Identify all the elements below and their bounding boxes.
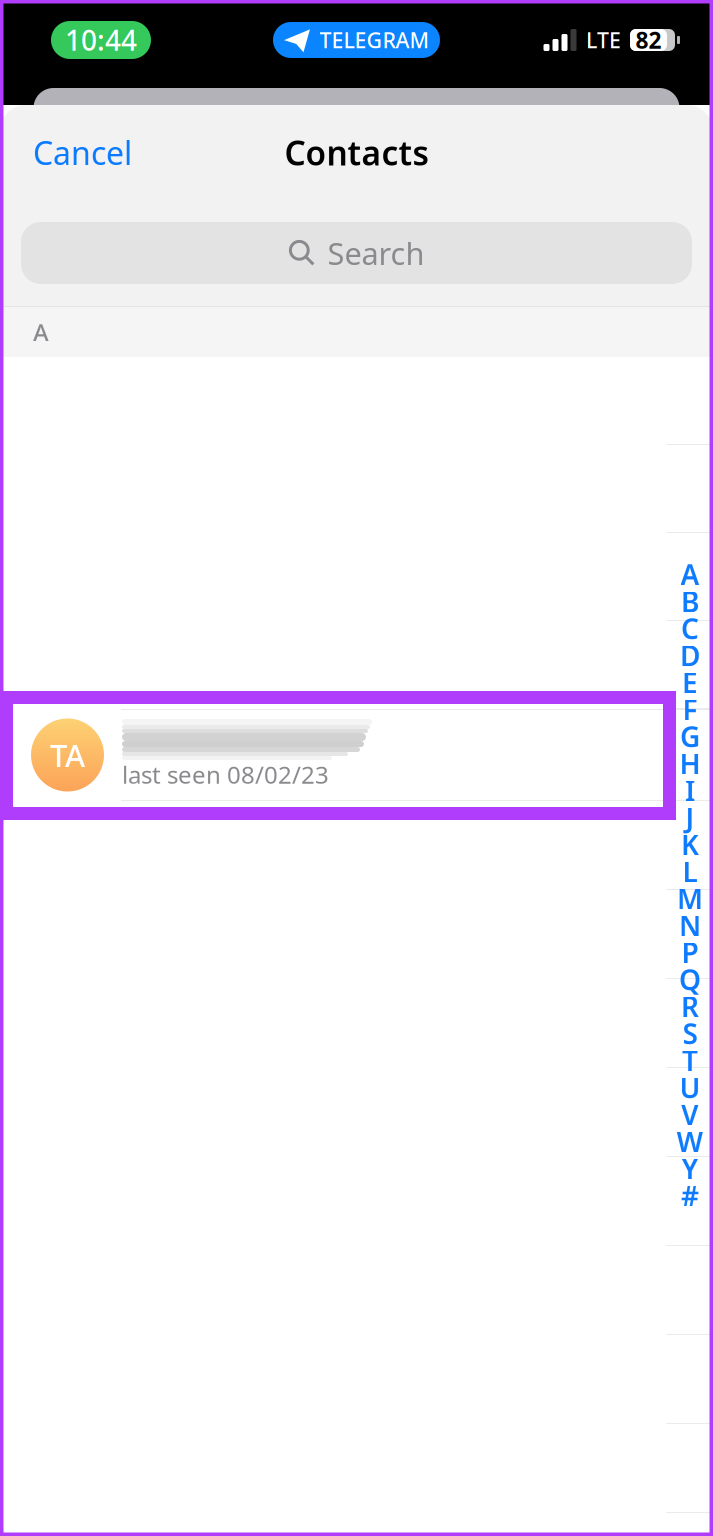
staticText: I (685, 772, 695, 809)
staticText: S (682, 1015, 697, 1052)
staticText: K (681, 826, 699, 863)
staticText: # (681, 1177, 699, 1214)
staticText: 82 (635, 25, 661, 55)
staticText: last seen 08/02/23 (122, 759, 329, 790)
staticText: F (682, 691, 697, 728)
button[interactable]: TA (0, 709, 713, 801)
staticText: J (685, 799, 694, 836)
button[interactable]: Cancel (0, 113, 165, 192)
staticText: TELEGRAM (319, 26, 429, 54)
staticText: L (682, 853, 697, 890)
staticText: Q (679, 961, 701, 998)
staticText: E (682, 664, 698, 701)
staticText: P (681, 934, 698, 971)
staticText: Contacts (284, 130, 428, 175)
staticText: N (679, 907, 701, 944)
staticText: Y (681, 1150, 698, 1187)
staticText: LTE (586, 26, 621, 54)
staticText: H (679, 745, 700, 782)
staticText: Cancel (33, 131, 132, 174)
staticText: C (681, 610, 699, 647)
staticText: TA (50, 735, 85, 775)
staticText: A (680, 556, 699, 593)
staticText: Search (327, 233, 424, 273)
staticText: T (682, 1042, 698, 1079)
staticText: 10:44 (65, 21, 137, 59)
staticText: R (681, 988, 699, 1025)
staticText: M (677, 880, 703, 917)
staticText: D (680, 637, 700, 674)
staticText: U (679, 1069, 700, 1106)
staticText: W (676, 1123, 703, 1160)
staticText: A (33, 316, 49, 348)
staticText: V (681, 1096, 699, 1133)
staticText: G (680, 718, 700, 755)
staticText: B (681, 583, 699, 620)
